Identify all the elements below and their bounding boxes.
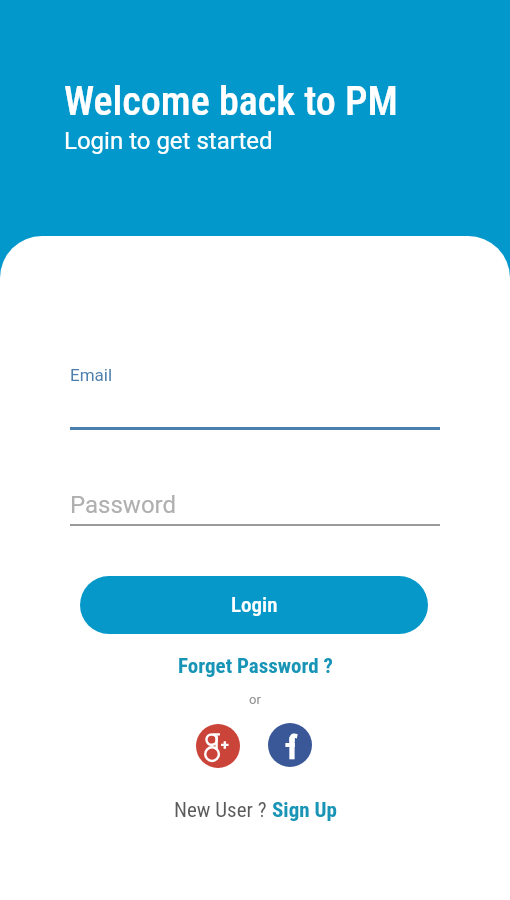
staticText: Welcome back to PM (64, 78, 398, 125)
staticText: Login (231, 593, 278, 618)
staticText: Email (70, 365, 113, 385)
button[interactable]: Sign in with Google Plus (196, 724, 240, 768)
button[interactable]: Sign in with Facebook (268, 723, 312, 767)
staticText: Password (70, 491, 177, 519)
staticText: Login to get started (64, 127, 273, 155)
staticText: or (249, 692, 261, 707)
button[interactable]: Forget Password ? (166, 650, 345, 683)
button[interactable]: Sign Up (272, 798, 337, 823)
button[interactable]: Login (80, 576, 428, 634)
staticText: Sign Up (272, 798, 337, 823)
staticText: New User ? (174, 798, 272, 823)
staticText: Forget Password ? (178, 654, 333, 679)
